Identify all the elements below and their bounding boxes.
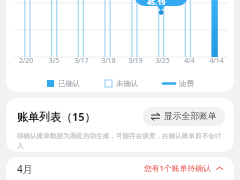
staticText: 4月 bbox=[17, 162, 33, 176]
staticText: 您有1个账单待确认 bbox=[144, 163, 211, 174]
staticText: 油费 bbox=[179, 79, 194, 88]
staticText: 3/5 bbox=[40, 56, 68, 65]
other: Collapse bbox=[215, 164, 224, 173]
staticText: 3/17 bbox=[68, 56, 95, 65]
staticText: 显示全部账单 bbox=[164, 111, 217, 122]
button[interactable]: 4月 bbox=[6, 157, 234, 180]
staticText: 已确认 bbox=[58, 79, 81, 88]
button[interactable]: 显示全部账单 bbox=[143, 107, 225, 126]
staticText: 2/20 bbox=[12, 56, 40, 65]
staticText: 3/19 bbox=[122, 56, 149, 65]
staticText: 账单列表（15） bbox=[17, 109, 96, 124]
staticText: 4/4 bbox=[176, 56, 203, 65]
staticText: 45.19 bbox=[147, 0, 166, 7]
staticText: 未确认 bbox=[116, 79, 139, 88]
staticText: 3/25 bbox=[149, 56, 176, 65]
staticText: 4/14 bbox=[203, 56, 230, 65]
staticText: 3/18 bbox=[95, 56, 122, 65]
staticText: 待确认账单数据为系统自动生成，可能存在误差，在确认账单前不会计入 行车统计 bbox=[17, 132, 225, 152]
